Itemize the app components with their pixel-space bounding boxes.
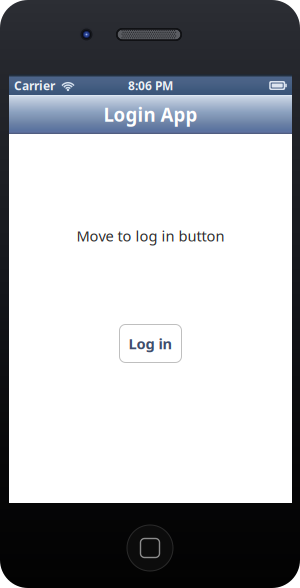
staticText: Move to log in button xyxy=(76,226,224,245)
staticText: Carrier xyxy=(14,77,55,93)
button[interactable]: Log in xyxy=(119,324,181,362)
staticText: Login App xyxy=(103,102,197,127)
staticText: 8:06 PM xyxy=(128,77,173,93)
staticText: Log in xyxy=(128,334,172,353)
